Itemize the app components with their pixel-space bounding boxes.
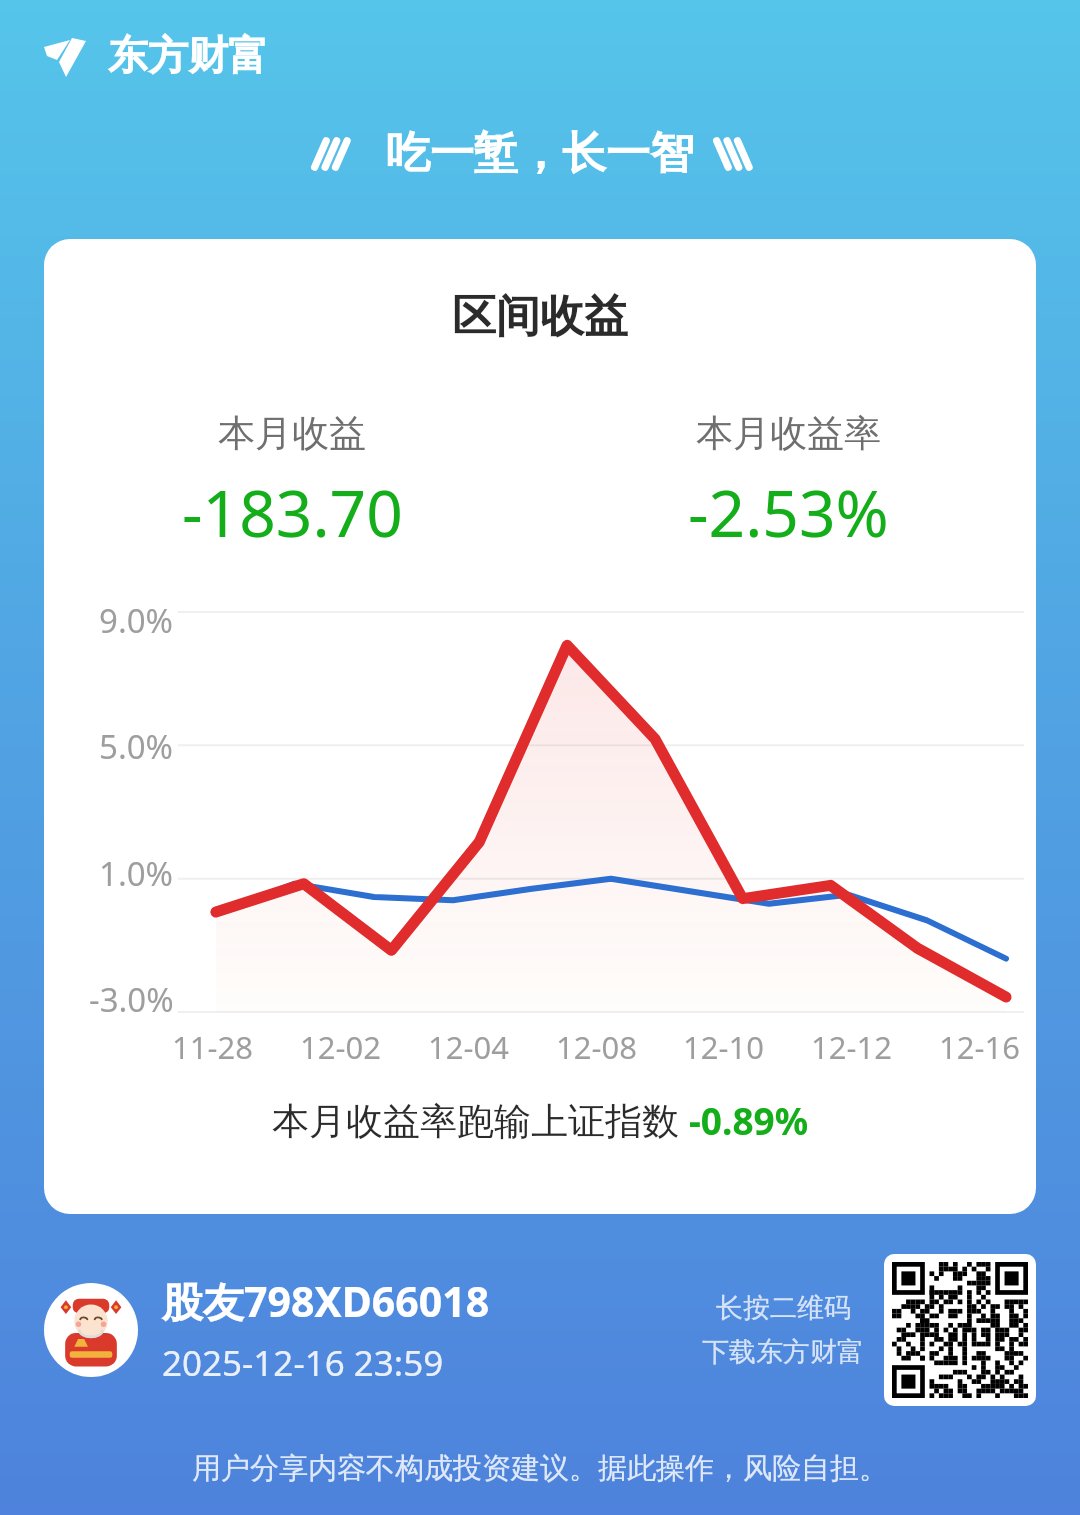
button[interactable]: 本月收益率: [540, 410, 1036, 556]
staticText: 1.0%: [99, 851, 174, 896]
staticText: 12-04: [428, 1026, 509, 1068]
staticText: 区间收益: [452, 289, 628, 344]
staticText: 12-16: [939, 1026, 1020, 1068]
button[interactable]: 区间收益: [44, 239, 1036, 1214]
staticText: 12-02: [300, 1026, 381, 1068]
staticText: 本月收益: [218, 410, 366, 457]
staticText: 5.0%: [99, 724, 174, 769]
staticText: 长按二维码: [716, 1291, 851, 1325]
button[interactable]: 二维码 下载东方财富: [884, 1254, 1036, 1406]
staticText: -2.53%: [688, 469, 889, 556]
staticText: -3.0%: [89, 977, 174, 1022]
staticText: 本月收益率: [696, 410, 881, 457]
staticText: 吃一堑，长一智: [386, 126, 694, 181]
staticText: 12-10: [683, 1026, 764, 1068]
staticText: 12-12: [811, 1026, 892, 1068]
staticText: 用户分享内容不构成投资建议。据此操作，风险自担。: [192, 1450, 888, 1487]
staticText: -183.70: [182, 469, 403, 556]
staticText: 12-08: [556, 1026, 637, 1068]
staticText: 9.0%: [99, 598, 174, 643]
staticText: 11-28: [172, 1026, 253, 1068]
staticText: 股友798XD66018: [162, 1273, 490, 1329]
button[interactable]: 用户头像: [44, 1283, 138, 1377]
staticText: 本月收益率跑输上证指数: [272, 1094, 689, 1145]
staticText: 东方财富: [108, 30, 268, 80]
staticText: 2025-12-16 23:59: [162, 1339, 444, 1387]
staticText: -0.89%: [689, 1095, 809, 1145]
staticText: 下载东方财富: [702, 1335, 864, 1369]
button[interactable]: 东方财富: [42, 30, 268, 80]
button[interactable]: 本月收益: [44, 410, 540, 556]
